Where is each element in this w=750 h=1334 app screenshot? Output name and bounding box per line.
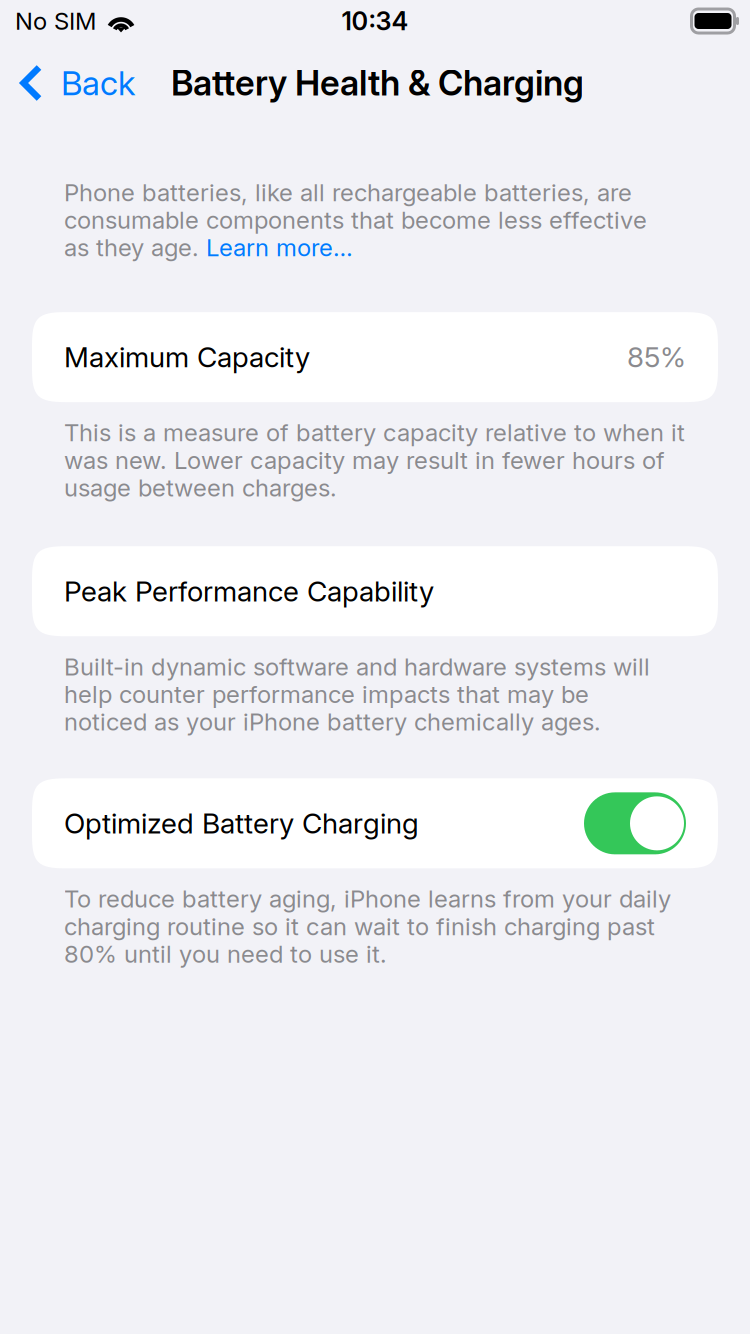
- button[interactable]: Optimized Battery Charging: [584, 792, 686, 854]
- staticText: This is a measure of battery capacity re…: [64, 418, 685, 502]
- staticText: Peak Performance Capability: [64, 574, 434, 608]
- staticText: Maximum Capacity: [64, 340, 310, 374]
- staticText: To reduce battery aging, iPhone learns f…: [64, 884, 671, 968]
- staticText: Optimized Battery Charging: [64, 806, 419, 840]
- staticText: Built-in dynamic software and hardware s…: [64, 652, 650, 736]
- staticText: 85%: [627, 340, 686, 374]
- button[interactable]: Back: [0, 50, 147, 116]
- staticText: No SIM: [15, 6, 96, 35]
- button[interactable]: Peak Performance Capability: [0, 546, 750, 636]
- staticText: Battery Health & Charging: [171, 62, 584, 104]
- staticText: 10:34: [341, 6, 408, 36]
- staticText: Phone batteries, like all rechargeable b…: [64, 178, 647, 262]
- staticText: Back: [61, 63, 135, 103]
